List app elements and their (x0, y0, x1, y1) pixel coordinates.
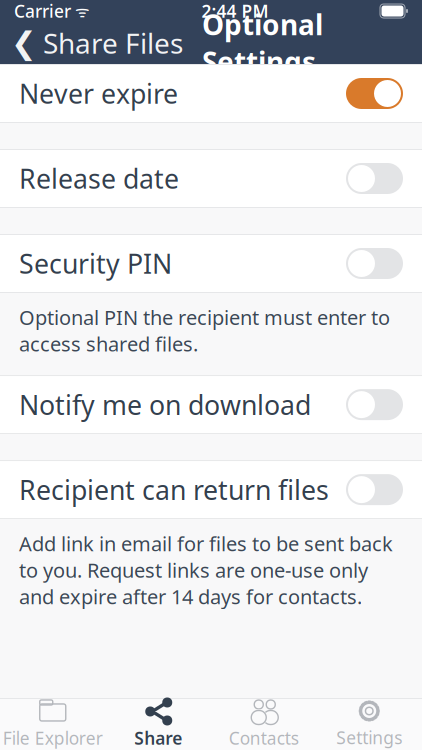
staticText: Add link in email for files to be sent b… (19, 530, 393, 610)
staticText: 2:44 PM (201, 0, 268, 22)
button[interactable]: Release date (0, 150, 422, 207)
button[interactable]: Contacts (211, 699, 316, 749)
button[interactable]: Never expire (0, 65, 422, 122)
staticText: Share (134, 726, 182, 749)
staticText: Release date (19, 161, 179, 196)
button[interactable]: Notify me on download (0, 376, 422, 433)
staticText: Settings (336, 726, 402, 749)
staticText: ᯤ (71, 0, 90, 22)
button[interactable]: Share (105, 699, 211, 749)
staticText: Contacts (229, 726, 299, 749)
staticText: Share Files (43, 24, 183, 62)
staticText: Recipient can return files (19, 472, 329, 507)
button[interactable]: Recipient can return files (0, 461, 422, 518)
staticText: Security PIN (19, 246, 172, 281)
staticText: Optional Settings (202, 6, 323, 80)
staticText: Notify me on download (19, 387, 311, 422)
staticText: ❮ (11, 26, 37, 60)
button[interactable]: Settings (316, 699, 422, 749)
staticText: File Explorer (3, 726, 103, 749)
staticText: Optional PIN the recipient must enter to… (19, 304, 390, 357)
button[interactable]: File Explorer (0, 699, 105, 749)
staticText: Never expire (19, 76, 178, 111)
button[interactable]: ❮ (0, 22, 191, 64)
staticText: Carrier (14, 0, 71, 22)
button[interactable]: Security PIN (0, 235, 422, 292)
